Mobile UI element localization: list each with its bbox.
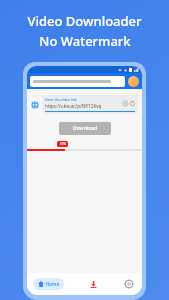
button[interactable]: Downloads [86, 277, 100, 291]
staticText: No Watermark [39, 32, 131, 50]
staticText: Home [46, 281, 59, 287]
button[interactable]: Settings [122, 277, 136, 291]
button[interactable]: Paste [130, 101, 135, 106]
button[interactable]: Download [59, 122, 111, 135]
other: Link [31, 101, 39, 109]
button[interactable]: Home [33, 278, 64, 290]
button[interactable]: Enter the video link [42, 95, 138, 114]
button[interactable] [30, 76, 125, 87]
staticText: 35% [60, 142, 66, 146]
staticText: Enter the video link [45, 97, 77, 102]
button[interactable]: Account [128, 76, 139, 87]
button[interactable]: Clear [123, 101, 128, 106]
staticText: https://v.kw.ac/p/f8Y12Kvq [45, 103, 102, 109]
staticText: Video Downloader [27, 12, 142, 30]
staticText: Download [73, 125, 98, 132]
